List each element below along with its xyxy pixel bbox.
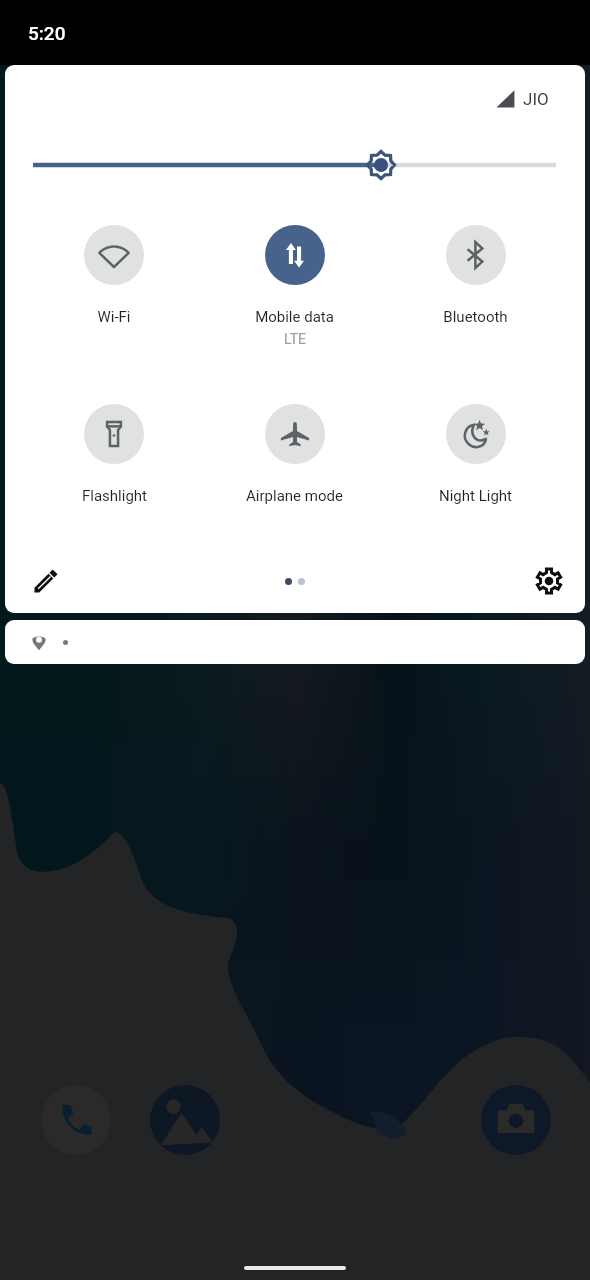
button[interactable]: Phone xyxy=(41,1085,111,1155)
button[interactable]: Camera xyxy=(481,1085,551,1155)
staticText: JIO xyxy=(523,89,549,109)
button[interactable]: Night Light xyxy=(385,404,566,505)
staticText: Mobile data xyxy=(255,308,334,326)
button[interactable]: Bluetooth xyxy=(385,225,566,326)
button[interactable]: Wi-Fi xyxy=(24,225,204,326)
staticText: Airplane mode xyxy=(246,487,343,505)
staticText: Flashlight xyxy=(82,487,147,505)
staticText: Night Light xyxy=(439,487,512,505)
button[interactable]: Edit tiles xyxy=(23,558,69,604)
staticText: Bluetooth xyxy=(443,308,508,326)
button[interactable]: Photos xyxy=(150,1085,220,1155)
button[interactable]: Mobile data xyxy=(204,225,385,347)
staticText: LTE xyxy=(284,331,306,347)
button[interactable]: Settings xyxy=(526,558,572,604)
button[interactable]: Airplane mode xyxy=(204,404,385,505)
staticText: 5:20 xyxy=(28,22,66,44)
button[interactable]: Flashlight xyxy=(24,404,204,505)
button[interactable] xyxy=(5,620,585,664)
staticText: Wi-Fi xyxy=(97,308,131,326)
